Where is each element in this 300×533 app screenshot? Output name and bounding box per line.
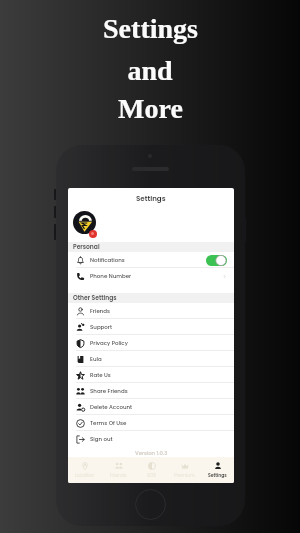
staticText: Premium [174,472,195,478]
button[interactable]: Location [68,457,102,483]
staticText: Delete Account [90,403,133,411]
staticText: Support [90,323,113,331]
staticText: Other Settings [73,294,117,302]
staticText: Phone Number [90,272,132,280]
button[interactable]: Rate Us [68,367,234,383]
staticText: Location [75,472,95,478]
staticText: Settings [103,13,198,44]
staticText: Eula [90,355,102,363]
button[interactable]: SOS [135,457,168,483]
staticText: Privacy Policy [90,339,128,347]
staticText: Settings [208,472,227,478]
staticText: Personal [73,243,100,251]
button[interactable]: Friends [102,457,135,483]
button[interactable]: Eula [68,351,234,367]
staticText: Rate Us [90,371,111,379]
staticText: Version 1.0.3 [135,449,168,456]
staticText: SOS [147,472,156,478]
staticText: Terms Of Use [90,419,127,427]
button[interactable]: Terms Of Use [68,415,234,431]
button[interactable]: Share Friends [68,383,234,399]
button[interactable]: Support [68,319,234,335]
staticText: Share Friends [90,387,128,395]
button[interactable]: Premium [168,457,201,483]
button[interactable]: Settings [201,457,234,483]
button[interactable]: Sign out [68,431,234,447]
staticText: Settings [136,194,166,204]
button[interactable]: Delete Account [68,399,234,415]
staticText: Friends [110,472,127,478]
staticText: More [118,93,183,124]
staticText: and [127,55,173,86]
staticText: Notifications [90,256,125,264]
button[interactable]: Privacy Policy [68,335,234,351]
button[interactable]: Notifications [68,252,234,268]
button[interactable]: Phone Number [68,268,234,284]
staticText: Friends [90,307,111,315]
staticText: Sign out [90,435,113,443]
button[interactable]: Friends [68,303,234,319]
